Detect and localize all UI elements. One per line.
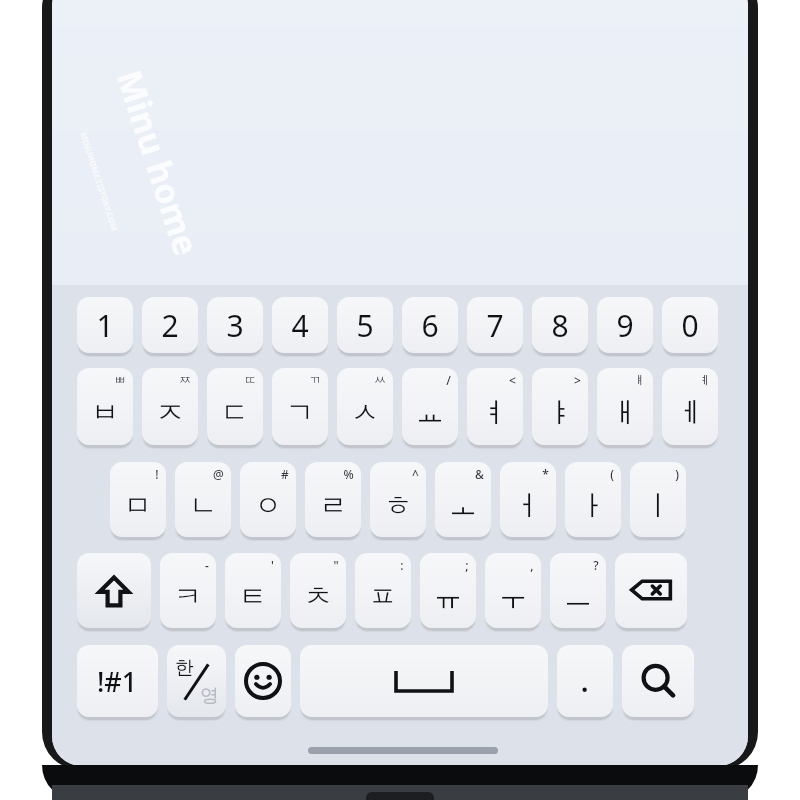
- staticText: 1: [96, 305, 114, 346]
- button[interactable]: 3: [207, 297, 263, 353]
- staticText: ㄴ: [189, 488, 217, 523]
- button[interactable]: @: [175, 462, 231, 537]
- staticText: 9: [616, 305, 634, 346]
- staticText: 3: [226, 305, 244, 346]
- staticText: ㅊ: [304, 579, 332, 614]
- staticText: ㅈ: [156, 395, 184, 430]
- staticText: 4: [291, 305, 309, 346]
- staticText: 8: [551, 305, 569, 346]
- staticText: ㅔ: [676, 395, 704, 430]
- button[interactable]: ㅉ: [142, 368, 198, 445]
- staticText: ㅎ: [384, 488, 412, 523]
- staticText: ㅜ: [499, 579, 527, 614]
- button[interactable]: 0: [662, 297, 718, 353]
- button[interactable]: .: [557, 645, 613, 717]
- staticText: ;: [465, 557, 469, 573]
- button[interactable]: 6: [402, 297, 458, 353]
- button[interactable]: %: [305, 462, 361, 537]
- staticText: *: [542, 466, 549, 482]
- staticText: %: [343, 466, 354, 482]
- staticText: ㅋ: [174, 579, 202, 614]
- button[interactable]: Search: [622, 645, 694, 717]
- staticText: ㅡ: [564, 579, 592, 614]
- staticText: ㅂ: [91, 395, 119, 430]
- button[interactable]: ?: [550, 553, 606, 628]
- button[interactable]: Shift: [77, 553, 151, 628]
- staticText: 6: [421, 305, 439, 346]
- button[interactable]: !: [110, 462, 166, 537]
- staticText: 5: [356, 305, 374, 346]
- staticText: ㅃ: [114, 372, 126, 387]
- button[interactable]: ㅒ: [597, 368, 653, 445]
- button[interactable]: ㄲ: [272, 368, 328, 445]
- button[interactable]: ^: [370, 462, 426, 537]
- staticText: ㅐ: [611, 395, 639, 430]
- staticText: ,: [530, 557, 534, 573]
- staticText: ㅒ: [634, 372, 646, 387]
- button[interactable]: ': [225, 553, 281, 628]
- button[interactable]: ): [630, 462, 686, 537]
- staticText: -: [205, 557, 209, 573]
- staticText: ㅠ: [434, 579, 462, 614]
- button[interactable]: ㅖ: [662, 368, 718, 445]
- button[interactable]: ": [290, 553, 346, 628]
- button[interactable]: /: [402, 368, 458, 445]
- button[interactable]: <: [467, 368, 523, 445]
- staticText: :: [400, 557, 404, 573]
- staticText: ㄷ: [221, 395, 249, 430]
- button[interactable]: ;: [420, 553, 476, 628]
- button[interactable]: (: [565, 462, 621, 537]
- staticText: ): [675, 466, 679, 482]
- button[interactable]: Space: [300, 645, 548, 717]
- button[interactable]: !#1: [77, 645, 158, 717]
- staticText: ^: [412, 466, 419, 482]
- button[interactable]: 9: [597, 297, 653, 353]
- button[interactable]: 5: [337, 297, 393, 353]
- staticText: ㅆ: [374, 372, 386, 387]
- button[interactable]: 4: [272, 297, 328, 353]
- staticText: Minu home: [107, 64, 210, 262]
- button[interactable]: 7: [467, 297, 523, 353]
- staticText: ㅕ: [481, 395, 509, 430]
- staticText: &: [475, 466, 484, 482]
- button[interactable]: 1: [77, 297, 133, 353]
- staticText: ㅓ: [514, 488, 542, 523]
- staticText: ㅍ: [369, 579, 397, 614]
- staticText: ㄹ: [319, 488, 347, 523]
- staticText: !: [155, 466, 159, 482]
- staticText: >: [574, 372, 581, 388]
- button[interactable]: &: [435, 462, 491, 537]
- staticText: .: [581, 664, 589, 699]
- staticText: #: [281, 466, 289, 482]
- button[interactable]: ㅃ: [77, 368, 133, 445]
- staticText: 한: [175, 656, 194, 680]
- staticText: ': [271, 557, 274, 573]
- staticText: ㄱ: [286, 395, 314, 430]
- staticText: <: [509, 372, 516, 388]
- button[interactable]: Emoji: [235, 645, 291, 717]
- staticText: ㅛ: [416, 395, 444, 430]
- staticText: 영: [200, 684, 219, 708]
- button[interactable]: 8: [532, 297, 588, 353]
- button[interactable]: 2: [142, 297, 198, 353]
- staticText: ㄲ: [309, 372, 321, 387]
- button[interactable]: ㄸ: [207, 368, 263, 445]
- staticText: ㅖ: [699, 372, 711, 387]
- staticText: ㅑ: [546, 395, 574, 430]
- button[interactable]: >: [532, 368, 588, 445]
- button[interactable]: *: [500, 462, 556, 537]
- staticText: ㄸ: [244, 372, 256, 387]
- staticText: 7: [486, 305, 504, 346]
- button[interactable]: Backspace: [615, 553, 687, 628]
- button[interactable]: Language: [167, 645, 226, 717]
- staticText: !#1: [97, 663, 138, 700]
- button[interactable]: #: [240, 462, 296, 537]
- button[interactable]: -: [160, 553, 216, 628]
- staticText: ㅗ: [449, 488, 477, 523]
- staticText: ㅁ: [124, 488, 152, 523]
- staticText: ㅉ: [179, 372, 191, 387]
- button[interactable]: ,: [485, 553, 541, 628]
- staticText: 2: [161, 305, 179, 346]
- button[interactable]: ㅆ: [337, 368, 393, 445]
- button[interactable]: :: [355, 553, 411, 628]
